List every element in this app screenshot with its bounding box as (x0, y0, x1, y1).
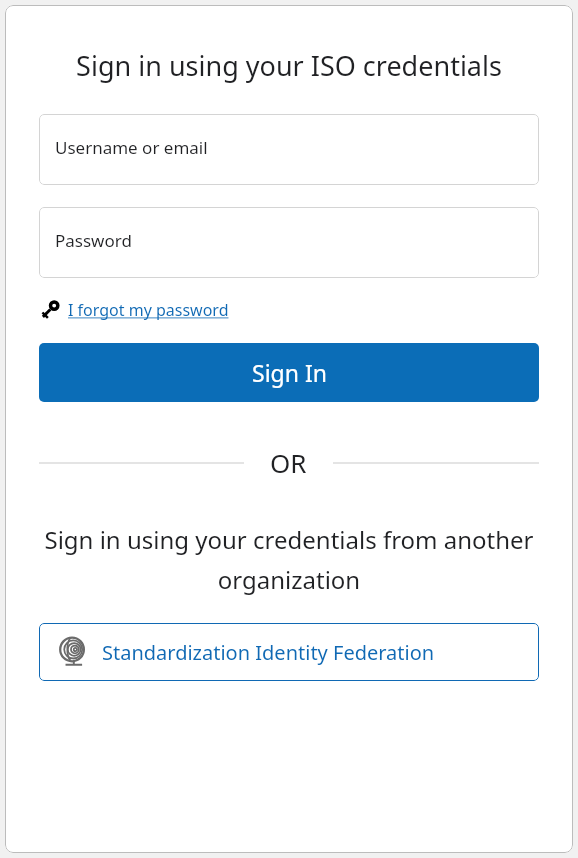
staticText: OR (270, 445, 307, 480)
button[interactable]: Username or email (39, 114, 539, 185)
button[interactable]: Federation provider (39, 623, 539, 681)
staticText: Sign in using your credentials from anot… (39, 523, 539, 596)
button[interactable]: Sign In (39, 343, 539, 402)
staticText: Sign in using your ISO credentials (39, 47, 539, 84)
button[interactable]: Password (39, 207, 539, 278)
button[interactable]: I forgot my password (39, 296, 229, 323)
other: Federation provider (57, 636, 89, 668)
staticText: Sign In (252, 357, 327, 388)
staticText: Standardization Identity Federation (102, 639, 435, 666)
staticText: Username or email (55, 136, 208, 159)
staticText: Password (55, 229, 132, 252)
staticText: I forgot my password (68, 299, 229, 321)
